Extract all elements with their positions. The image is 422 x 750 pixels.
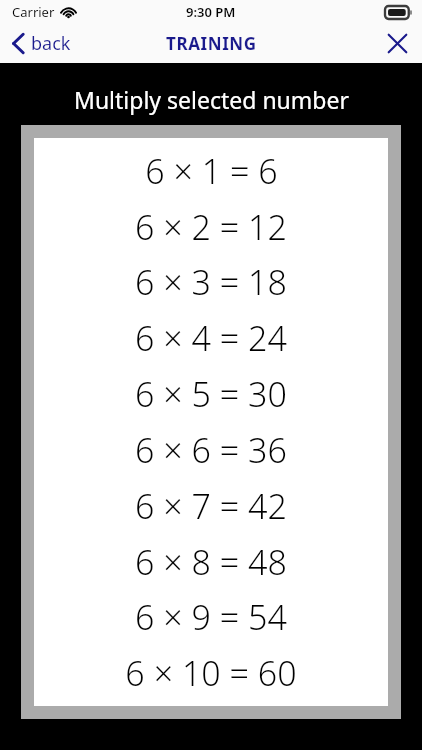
- staticText: TRAINING: [166, 32, 257, 55]
- staticText: 9:30 PM: [186, 3, 236, 21]
- button[interactable]: back: [0, 24, 83, 63]
- staticText: 6 × 2 = 12: [135, 204, 287, 250]
- staticText: 6 × 10 = 60: [125, 650, 297, 696]
- staticText: 6 × 1 = 6: [145, 148, 278, 194]
- button[interactable]: Close: [373, 24, 422, 63]
- staticText: 6 × 9 = 54: [135, 594, 287, 640]
- staticText: 6 × 3 = 18: [135, 259, 287, 305]
- staticText: 6 × 4 = 24: [135, 315, 287, 361]
- staticText: back: [31, 31, 71, 56]
- staticText: 6 × 8 = 48: [135, 539, 287, 585]
- staticText: 6 × 7 = 42: [135, 483, 287, 529]
- staticText: Carrier: [12, 3, 55, 21]
- staticText: Multiply selected number: [74, 84, 349, 115]
- staticText: 6 × 6 = 36: [135, 427, 287, 473]
- staticText: 6 × 5 = 30: [135, 371, 287, 417]
